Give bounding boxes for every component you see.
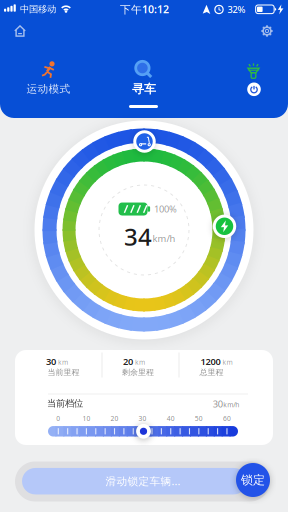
staticText: 运动模式	[26, 82, 70, 95]
staticText: 32%	[228, 3, 246, 16]
staticText: km	[58, 358, 68, 367]
staticText: 滑动锁定车辆...	[105, 474, 180, 488]
button[interactable]: 主页	[10, 21, 30, 41]
staticText: 10	[82, 414, 90, 423]
staticText: 20	[123, 355, 133, 367]
staticText: 中国移动	[20, 3, 56, 15]
button[interactable]: 电源	[246, 81, 262, 97]
staticText: 剩余里程	[122, 367, 154, 377]
button[interactable]: 寻车	[119, 58, 169, 98]
button[interactable]: 速度档位滑块	[136, 424, 151, 439]
staticText: 60	[223, 414, 231, 423]
button[interactable]: 锁定	[236, 463, 270, 497]
staticText: 100%	[154, 203, 177, 215]
staticText: 当前里程	[47, 367, 79, 377]
staticText: km	[222, 358, 232, 367]
staticText: 1200	[200, 355, 220, 367]
staticText: 50	[195, 414, 203, 423]
staticText: 40	[167, 414, 175, 423]
staticText: 30	[46, 355, 56, 367]
button[interactable]: 车灯	[243, 61, 263, 81]
staticText: 34	[124, 221, 152, 252]
staticText: 寻车	[132, 82, 156, 96]
staticText: km	[135, 358, 145, 367]
staticText: 下午10:12	[120, 2, 169, 16]
staticText: km/h	[223, 400, 239, 409]
staticText: 20	[110, 414, 118, 423]
staticText: 锁定	[241, 473, 265, 487]
staticText: 30	[139, 414, 147, 423]
staticText: 30	[213, 398, 223, 410]
staticText: 0	[56, 414, 60, 423]
staticText: 当前档位	[47, 398, 83, 409]
staticText: km/h	[152, 232, 175, 245]
staticText: 总里程	[200, 367, 224, 377]
button[interactable]: 运动模式	[16, 58, 80, 98]
button[interactable]: 设置	[259, 23, 275, 39]
